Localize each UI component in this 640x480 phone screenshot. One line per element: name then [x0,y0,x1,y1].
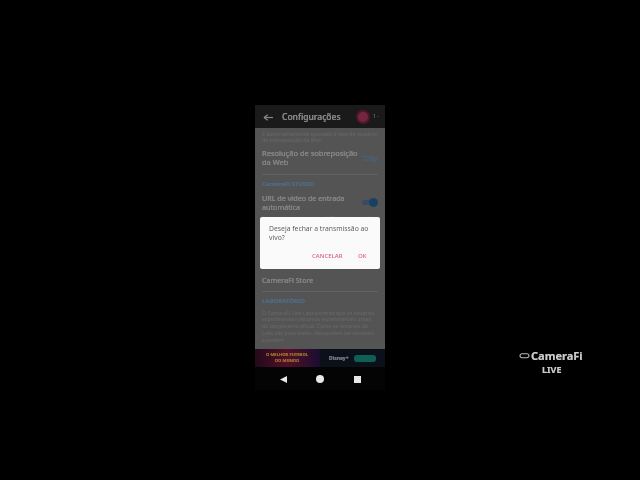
staticText: Configurações [282,111,341,123]
staticText: DO MUNDO [275,358,300,364]
staticText: OK [358,252,367,260]
staticText: Insira automaticamente o URL de transmis… [262,214,378,228]
button[interactable]: CANCELAR [308,250,347,262]
staticText: CameraFi [531,348,583,363]
staticText: LIVE [542,363,562,375]
staticText: CameraFi Store [262,275,314,285]
button[interactable]: Instalar [354,355,376,362]
button[interactable]: Recentes [348,370,366,388]
staticText: Disney+ [329,355,349,362]
staticText: 720p [362,154,378,163]
button[interactable]: URL de vídeo de entrada automática [262,193,378,212]
button[interactable]: Voltar [274,370,292,388]
staticText: Licenças de código aberto [262,239,350,249]
staticText: CANCELAR [312,252,343,260]
staticText: O MELHOR FUTEBOL [266,352,309,358]
staticText: Resolução de sobreposição da Web [262,148,358,168]
staticText: URL de vídeo de entrada automática [262,193,358,212]
button[interactable] [362,198,378,207]
button[interactable]: OK [354,250,371,262]
staticText: CameraFi STUDIO [262,180,315,188]
button[interactable]: Início [311,370,329,388]
staticText: 1 · [373,113,379,120]
staticText: LABORATÓRIO [262,297,306,305]
button[interactable]: Perfil [356,110,370,124]
staticText: O CameraFi Live Labs permite que os usuá… [262,309,378,344]
staticText: Deseja fechar a transmissão ao vivo? [269,224,371,242]
staticText: É automaticamente ajustado à taxa de qua… [262,130,378,144]
button[interactable]: Resolução de sobreposição da Web [262,148,378,168]
button[interactable]: Voltar [261,110,275,124]
